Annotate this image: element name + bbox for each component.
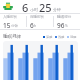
staticText: 分钟 <box>11 24 18 28</box>
staticText: 96 <box>57 21 65 29</box>
button[interactable] <box>3 41 78 80</box>
button[interactable]: 入睡时长 <box>0 14 26 29</box>
staticText: 睡眠规律 <box>3 34 21 40</box>
staticText: h <box>34 23 37 28</box>
other: Sleep quality badge <box>3 2 13 12</box>
staticText: 小时 <box>30 7 38 12</box>
button[interactable]: 深睡时长 <box>27 14 53 29</box>
staticText: 清醒 <box>70 35 77 39</box>
staticText: 15 <box>3 21 11 29</box>
staticText: 6 <box>30 21 34 29</box>
staticText: 浅睡 <box>58 35 65 39</box>
staticText: 深睡时长 <box>30 15 45 20</box>
staticText: 分钟 <box>53 7 61 12</box>
staticText: % <box>65 23 68 28</box>
staticText: 25 <box>39 0 52 13</box>
staticText: 睡眠得分 <box>57 15 72 20</box>
button[interactable]: 睡眠得分 <box>54 14 80 29</box>
staticText: 入睡时长 <box>3 15 18 20</box>
staticText: 6 <box>22 0 29 13</box>
button[interactable]: Sleep quality badge <box>0 0 80 13</box>
staticText: 深睡 <box>46 35 53 39</box>
